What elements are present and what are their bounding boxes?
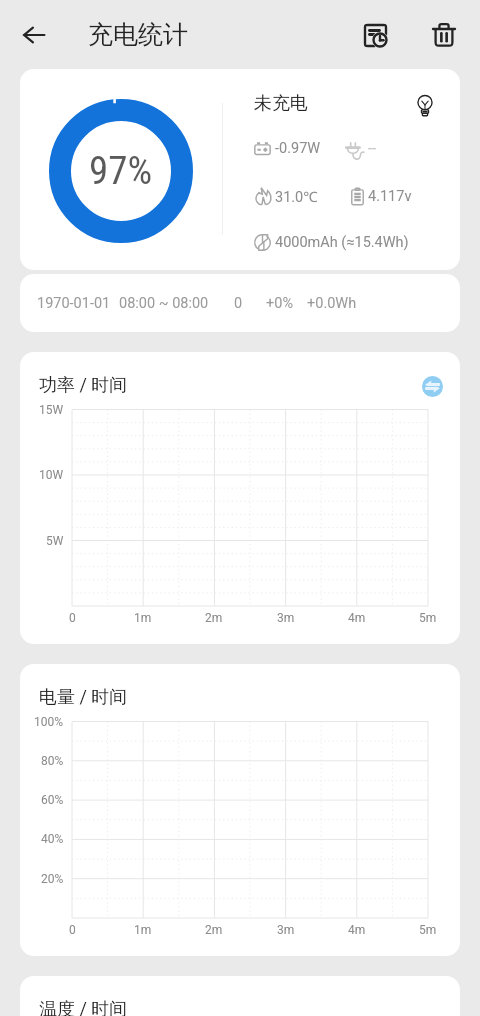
staticText: 3m	[277, 923, 295, 937]
button[interactable]: Swap axes	[414, 368, 451, 405]
staticText: 未充电	[254, 92, 308, 115]
staticText: 5m	[419, 611, 437, 625]
button[interactable]: 1970-01-01	[20, 274, 460, 332]
staticText: 1m	[134, 611, 152, 625]
staticText: 40%	[41, 832, 64, 846]
staticText: 5m	[419, 923, 437, 937]
staticText: 80%	[41, 754, 64, 768]
staticText: 2m	[205, 923, 223, 937]
staticText: 100%	[34, 715, 64, 729]
staticText: 5W	[46, 534, 64, 548]
staticText: --	[368, 140, 377, 157]
staticText: 4m	[348, 611, 366, 625]
staticText: 2m	[205, 611, 223, 625]
staticText: +0%	[266, 295, 293, 312]
button[interactable]: Delete	[420, 11, 468, 59]
staticText: 20%	[41, 872, 64, 886]
staticText: 4m	[348, 923, 366, 937]
staticText: 3m	[277, 611, 295, 625]
staticText: 1m	[134, 923, 152, 937]
staticText: 0	[69, 923, 76, 937]
staticText: 31.0℃	[275, 186, 318, 206]
staticText: 功率 / 时间	[39, 374, 128, 397]
staticText: 电量 / 时间	[39, 686, 128, 709]
button[interactable]: Tips	[407, 88, 443, 124]
staticText: -0.97W	[275, 140, 321, 157]
staticText: 0	[69, 611, 76, 625]
staticText: 1970-01-01	[37, 295, 111, 312]
staticText: 充电统计	[88, 19, 188, 50]
staticText: 15W	[39, 403, 64, 417]
staticText: 10W	[39, 468, 64, 482]
staticText: +0.0Wh	[307, 295, 357, 312]
staticText: 0	[234, 295, 243, 312]
staticText: 08:00 ~ 08:00	[119, 295, 209, 312]
staticText: 温度 / 时间	[39, 998, 128, 1016]
button[interactable]: Back	[10, 11, 58, 59]
button[interactable]: History	[351, 11, 399, 59]
staticText: 60%	[41, 793, 64, 807]
staticText: 4.117v	[368, 188, 412, 205]
staticText: 97%	[89, 148, 153, 194]
staticText: 4000mAh (≈15.4Wh)	[275, 234, 409, 251]
